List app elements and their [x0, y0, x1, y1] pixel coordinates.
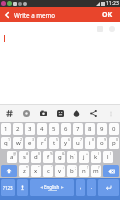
staticText: v: [58, 167, 62, 175]
button[interactable]: h: [67, 151, 77, 163]
button[interactable]: Settings: [19, 106, 34, 121]
staticText: h: [70, 153, 74, 161]
staticText: 9: [100, 125, 104, 133]
staticText: w: [16, 139, 21, 147]
button[interactable]: ,: [76, 179, 85, 196]
staticText: 11:23: [106, 0, 119, 7]
staticText: t: [53, 139, 56, 147]
button[interactable]: Camera: [36, 106, 51, 121]
button[interactable]: .: [87, 179, 96, 196]
staticText: n: [82, 167, 86, 175]
button[interactable]: g: [55, 151, 65, 163]
staticText: ': [51, 165, 52, 170]
button[interactable]: b: [67, 165, 77, 177]
staticText: e: [28, 139, 32, 147]
staticText: #: [26, 151, 29, 156]
staticText: p: [112, 139, 116, 147]
button[interactable]: 2: [13, 123, 23, 135]
staticText: 2: [20, 137, 23, 142]
button[interactable]: d: [31, 151, 41, 163]
button[interactable]: n: [79, 165, 89, 177]
staticText: ": [38, 165, 40, 170]
button[interactable]: z: [19, 165, 29, 177]
staticText: :: [63, 165, 64, 170]
button[interactable]: 3: [25, 123, 35, 135]
staticText: c: [47, 167, 50, 175]
staticText: ?123: [3, 185, 13, 191]
button[interactable]: m: [91, 165, 101, 177]
staticText: k: [94, 153, 98, 161]
button[interactable]: Hashtag: [2, 106, 17, 121]
button[interactable]: 5: [49, 123, 59, 135]
button[interactable]: 8: [85, 123, 95, 135]
staticText: *: [26, 165, 28, 170]
staticText: ,: [80, 184, 82, 191]
staticText: 6: [68, 137, 71, 142]
button[interactable]: English: [30, 179, 74, 196]
staticText: b: [70, 167, 74, 175]
button[interactable]: Share: [86, 106, 101, 121]
staticText: g: [58, 153, 62, 161]
button[interactable]: f: [43, 151, 53, 163]
staticText: English: [44, 184, 60, 190]
button[interactable]: a: [7, 151, 17, 163]
staticText: r: [41, 139, 44, 147]
staticText: 2: [16, 125, 20, 133]
button[interactable]: x: [31, 165, 41, 177]
staticText: !: [87, 165, 88, 170]
button[interactable]: 6: [61, 123, 71, 135]
button[interactable]: Enter: [98, 179, 119, 196]
button[interactable]: v: [55, 165, 65, 177]
button[interactable]: w: [13, 137, 23, 149]
button[interactable]: 7: [73, 123, 83, 135]
staticText: +: [86, 151, 89, 156]
staticText: $: [38, 151, 41, 156]
button[interactable]: j: [79, 151, 89, 163]
button[interactable]: i: [85, 137, 95, 149]
button[interactable]: l: [103, 151, 113, 163]
button[interactable]: c: [43, 165, 53, 177]
button[interactable]: t: [49, 137, 59, 149]
staticText: f: [47, 153, 50, 161]
button[interactable]: Backspace: [103, 165, 119, 177]
button[interactable]: Voice input: [17, 179, 28, 196]
staticText: .: [91, 184, 93, 191]
button[interactable]: e: [25, 137, 35, 149]
button[interactable]: OK: [96, 7, 120, 22]
staticText: 5: [52, 125, 56, 133]
staticText: 0: [116, 137, 119, 142]
staticText: @: [13, 151, 17, 156]
button[interactable]: r: [37, 137, 47, 149]
button[interactable]: k: [91, 151, 101, 163]
button[interactable]: Shift: [1, 165, 17, 177]
button[interactable]: 9: [97, 123, 107, 135]
button[interactable]: 0: [109, 123, 119, 135]
button[interactable]: 1: [1, 123, 11, 135]
staticText: s: [23, 153, 26, 161]
staticText: 4: [44, 137, 47, 142]
staticText: 9: [104, 137, 107, 142]
staticText: OK: [102, 10, 113, 20]
button[interactable]: q: [1, 137, 11, 149]
staticText: y: [64, 139, 68, 147]
staticText: Write a memo: [14, 11, 56, 19]
button[interactable]: Theme: [69, 106, 84, 121]
button[interactable]: u: [73, 137, 83, 149]
button[interactable]: y: [61, 137, 71, 149]
button[interactable]: o: [97, 137, 107, 149]
button[interactable]: ?123: [1, 179, 15, 196]
staticText: a: [10, 153, 14, 161]
staticText: 7: [76, 125, 80, 133]
staticText: (: [98, 151, 100, 156]
staticText: 7: [80, 137, 83, 142]
staticText: %: [50, 151, 53, 156]
button[interactable]: Back: [0, 7, 14, 22]
button[interactable]: p: [109, 137, 119, 149]
button[interactable]: s: [19, 151, 29, 163]
button[interactable]: 4: [37, 123, 47, 135]
staticText: j: [83, 153, 85, 161]
button[interactable]: Emoji: [53, 106, 68, 121]
staticText: q: [4, 139, 8, 147]
staticText: l: [107, 153, 109, 161]
